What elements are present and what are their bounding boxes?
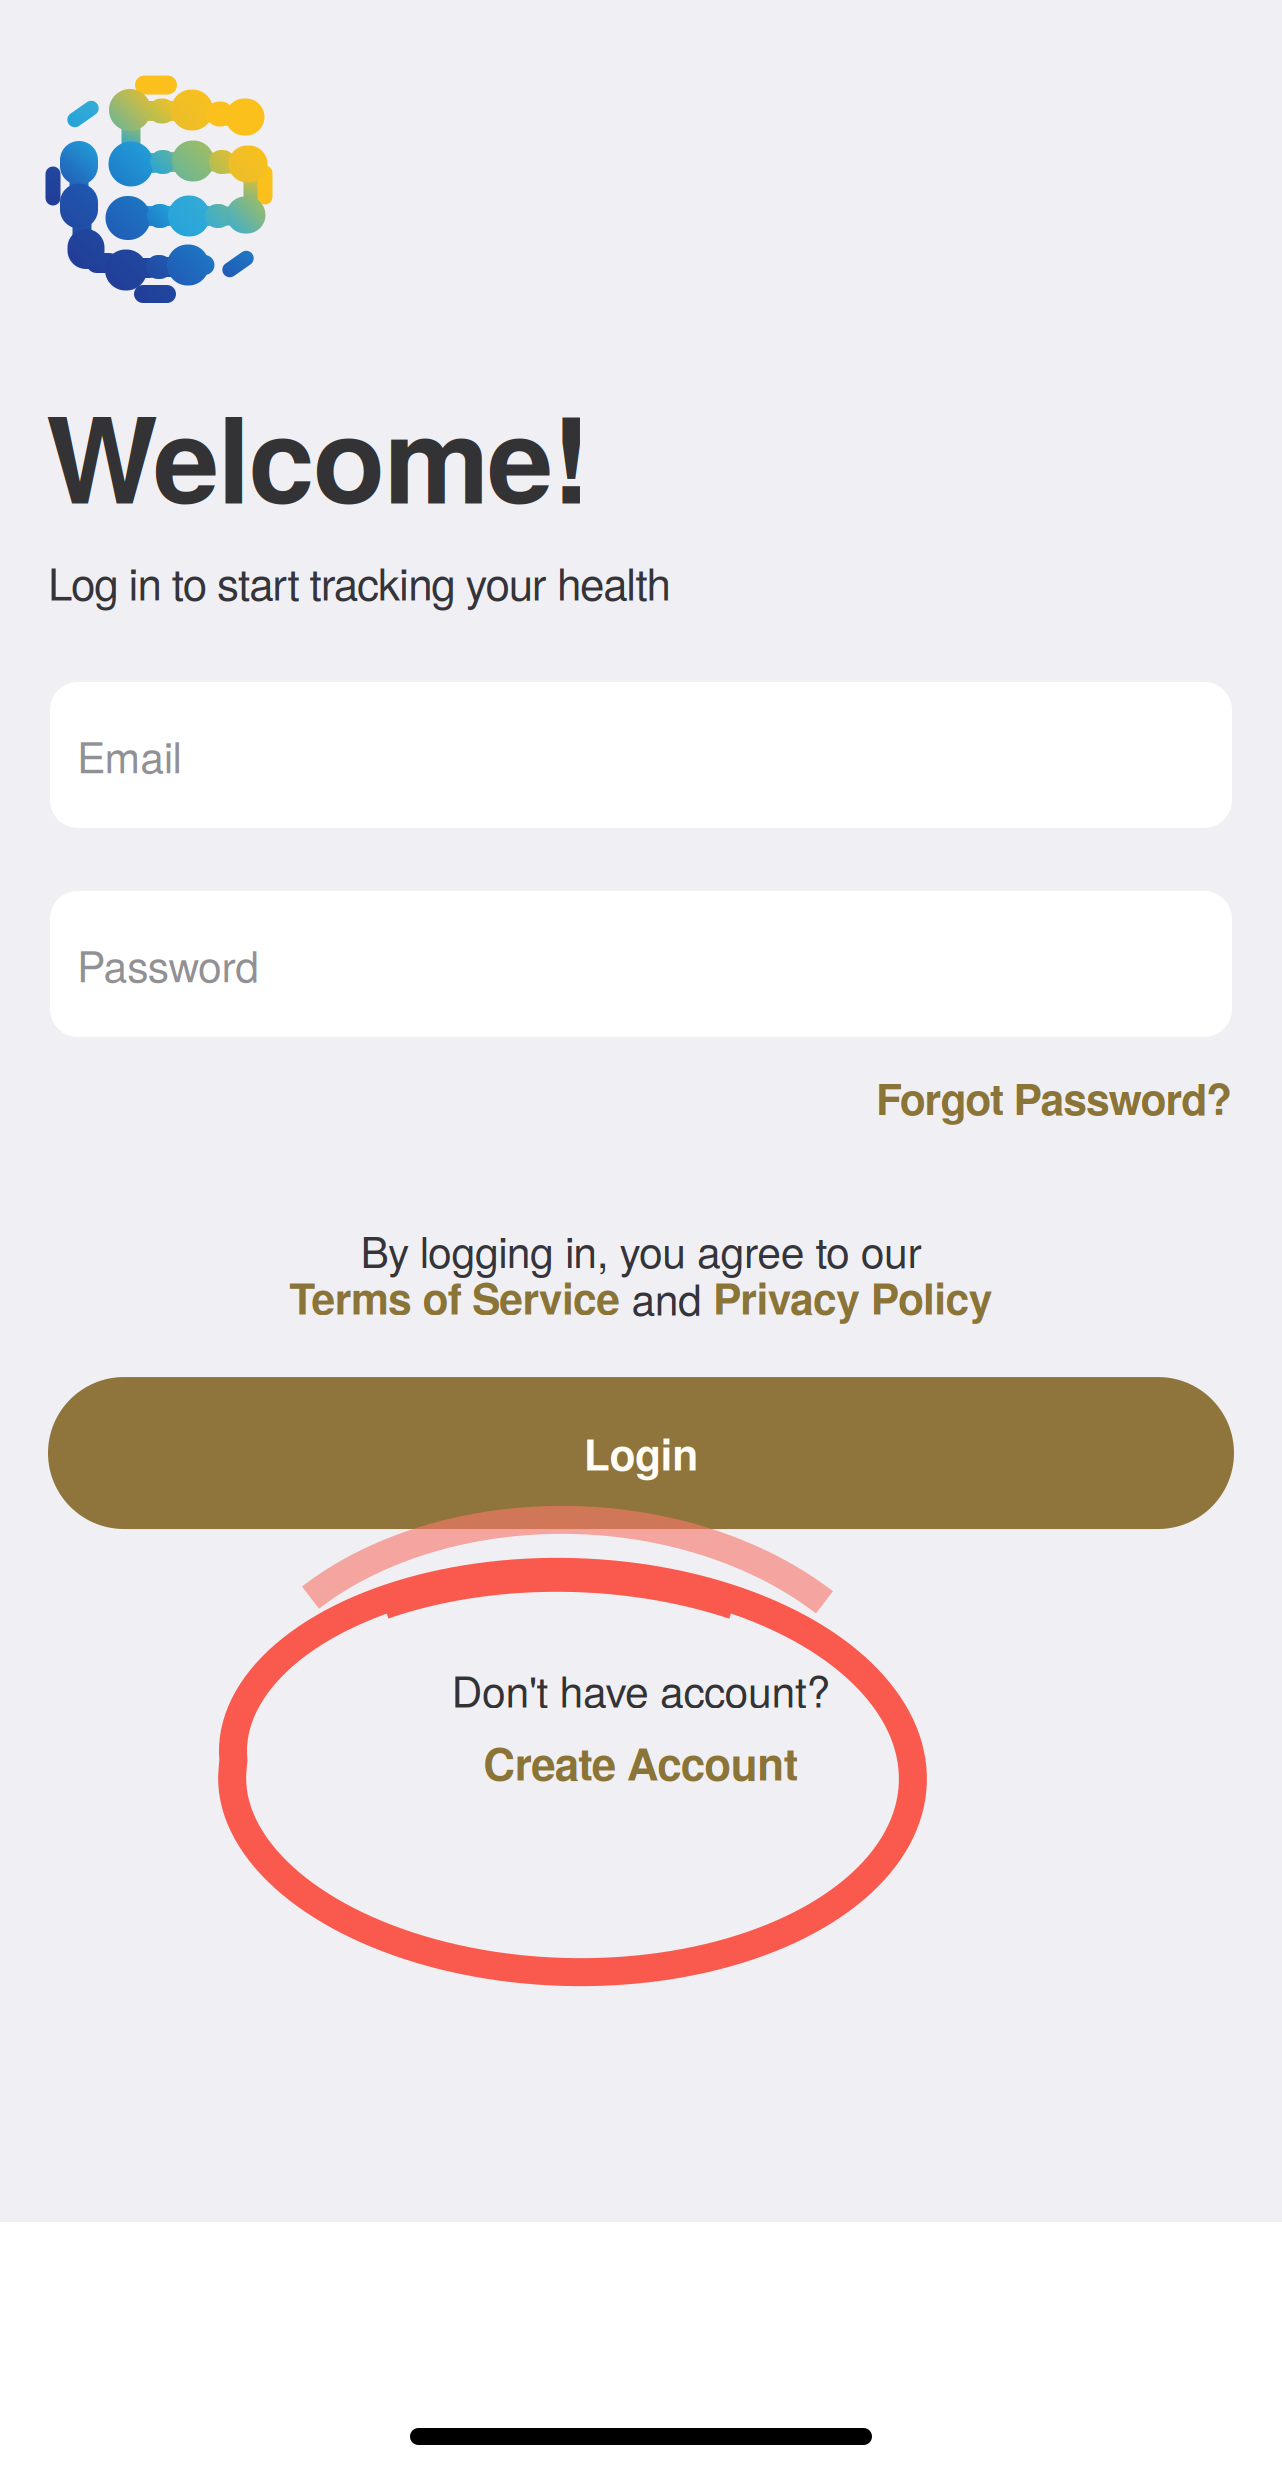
staticText: Email bbox=[77, 724, 181, 785]
staticText: Password bbox=[77, 933, 259, 994]
staticText: Welcome! bbox=[46, 370, 591, 540]
button[interactable]: Terms of Service bbox=[289, 1266, 620, 1328]
button[interactable]: Login bbox=[48, 1377, 1234, 1529]
button[interactable]: Privacy Policy bbox=[713, 1266, 993, 1328]
staticText: and bbox=[620, 1266, 713, 1328]
staticText: Log in to start tracking your health bbox=[48, 550, 670, 613]
staticText: Don't have account? bbox=[451, 1658, 830, 1720]
staticText: Create Account bbox=[483, 1731, 799, 1794]
button[interactable]: Create Account bbox=[483, 1731, 799, 1794]
staticText: Terms of Service bbox=[289, 1266, 620, 1328]
staticText: By logging in, you agree to our bbox=[360, 1219, 921, 1280]
button[interactable]: Forgot Password? bbox=[876, 1067, 1232, 1128]
staticText: Forgot Password? bbox=[876, 1067, 1232, 1128]
staticText: Privacy Policy bbox=[713, 1266, 993, 1328]
staticText: Login bbox=[584, 1422, 698, 1484]
